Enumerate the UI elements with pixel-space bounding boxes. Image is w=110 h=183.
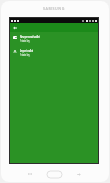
staticText: SAMSUNG	[43, 6, 65, 11]
button[interactable]: Back	[11, 24, 19, 32]
button[interactable]: New personal wallet	[10, 32, 98, 46]
button[interactable]: Recents	[25, 170, 35, 178]
button[interactable]: Home	[47, 171, 62, 178]
button[interactable]: Back	[74, 170, 84, 178]
staticText: Private key	[20, 39, 30, 43]
button[interactable]: Import wallet	[10, 46, 98, 60]
staticText: New personal wallet	[20, 35, 40, 39]
staticText: Import wallet	[20, 49, 33, 53]
staticText: Private key	[20, 53, 30, 57]
